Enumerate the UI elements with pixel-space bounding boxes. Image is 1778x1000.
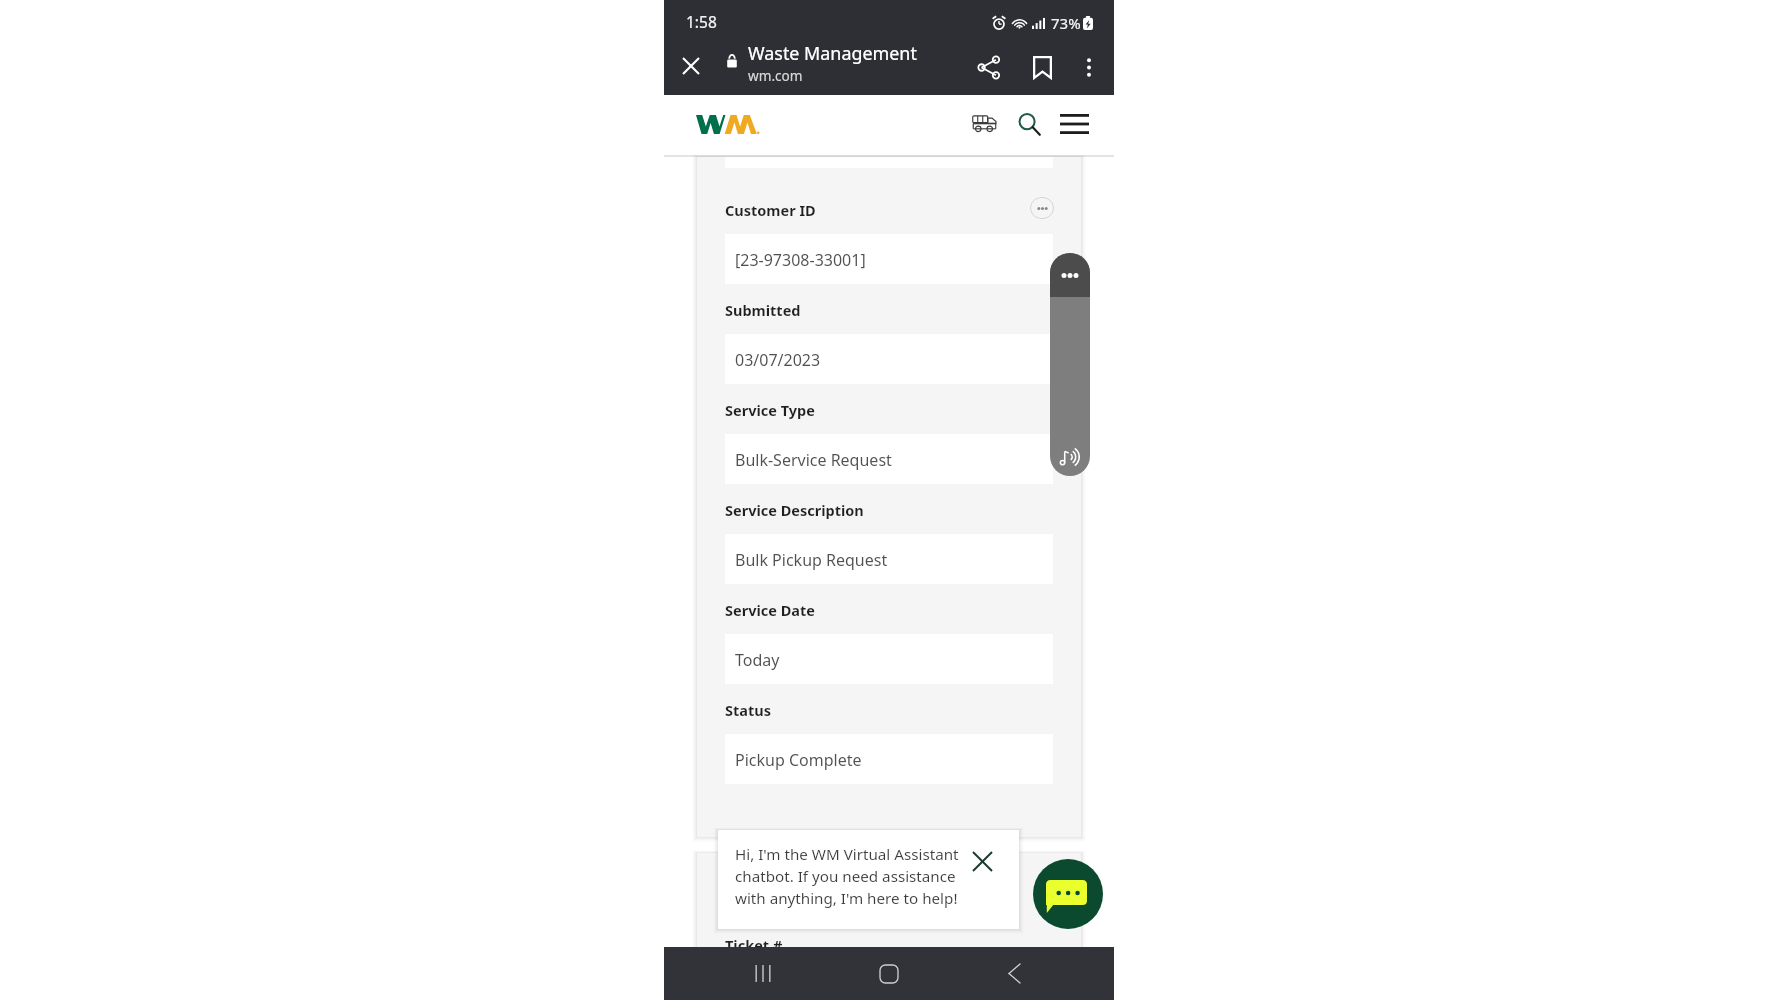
staticText: [23-97308-33001] xyxy=(735,249,866,271)
button[interactable]: Share xyxy=(967,42,1011,92)
button[interactable]: Open chat assistant xyxy=(1033,859,1103,929)
staticText: Customer ID xyxy=(725,200,816,220)
staticText: Hi, I'm the WM Virtual Assistant chatbot… xyxy=(735,844,967,908)
staticText: Submitted xyxy=(725,300,801,320)
staticText: Today xyxy=(735,649,780,671)
staticText: Ticket # xyxy=(725,935,783,955)
button[interactable]: Menu xyxy=(1053,102,1096,145)
button[interactable]: Hi, I'm the WM Virtual Assistant chatbot… xyxy=(718,830,1019,929)
button[interactable]: Recents xyxy=(737,947,789,1000)
button[interactable]: More actions xyxy=(1030,197,1054,219)
button[interactable]: Close xyxy=(669,44,713,88)
button[interactable]: Search xyxy=(1007,102,1050,145)
staticText: Bulk-Service Request xyxy=(735,449,892,471)
staticText: Service Type xyxy=(725,400,815,420)
staticText: Service Date xyxy=(725,600,815,620)
button[interactable]: Back xyxy=(988,947,1040,1000)
button[interactable]: Bookmark xyxy=(1020,42,1064,92)
button[interactable]: Home xyxy=(863,947,915,1000)
button[interactable]: Edge panel handle xyxy=(1050,253,1090,476)
button[interactable]: Pickup schedule xyxy=(963,102,1006,145)
staticText: Service Description xyxy=(725,500,864,520)
staticText: wm.com xyxy=(748,66,803,85)
staticText: Status xyxy=(725,700,771,720)
staticText: Pickup Complete xyxy=(735,749,862,771)
staticText: Bulk Pickup Request xyxy=(735,549,888,571)
staticText: Waste Management xyxy=(748,41,917,65)
staticText: 03/07/2023 xyxy=(735,349,821,371)
staticText: 73% xyxy=(1051,13,1081,33)
button[interactable]: Close chat prompt xyxy=(966,845,998,877)
staticText: 1:58 xyxy=(686,11,717,32)
button[interactable]: More options xyxy=(1071,42,1107,92)
